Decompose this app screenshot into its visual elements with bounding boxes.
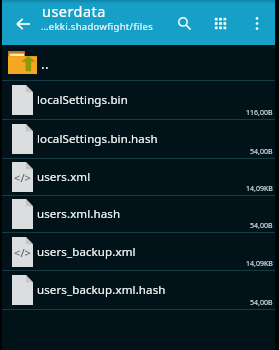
button[interactable]: </> <box>0 233 279 270</box>
staticText: users.xml.hash <box>37 206 121 222</box>
button[interactable]: .. <box>0 45 279 80</box>
staticText: userdata <box>42 1 106 21</box>
button[interactable]: localSettings.bin.hash <box>0 120 279 158</box>
staticText: users.xml <box>37 169 91 185</box>
staticText: 116,00B <box>246 108 273 118</box>
button[interactable]: Grid view <box>207 10 233 36</box>
staticText: </> <box>14 245 31 260</box>
staticText: localSettings.bin <box>37 92 128 108</box>
button[interactable]: More options <box>244 10 270 36</box>
staticText: 14,09KB <box>246 184 273 194</box>
staticText: 54,00B <box>250 221 273 231</box>
staticText: users_backup.xml.hash <box>37 282 166 298</box>
button[interactable]: users_backup.xml.hash <box>0 271 279 309</box>
staticText: localSettings.bin.hash <box>37 131 158 147</box>
staticText: …ekki.shadowfight/files <box>41 20 154 33</box>
staticText: 54,00B <box>250 147 273 157</box>
button[interactable]: users.xml.hash <box>0 196 279 232</box>
staticText: users_backup.xml <box>37 244 136 260</box>
button[interactable]: localSettings.bin <box>0 81 279 119</box>
staticText: .. <box>41 55 50 73</box>
staticText: </> <box>14 170 31 185</box>
staticText: 54,00B <box>250 298 273 308</box>
button[interactable]: Search <box>171 10 197 36</box>
button[interactable]: Back <box>10 11 36 37</box>
staticText: 14,09KB <box>246 259 273 269</box>
button[interactable]: </> <box>0 159 279 195</box>
